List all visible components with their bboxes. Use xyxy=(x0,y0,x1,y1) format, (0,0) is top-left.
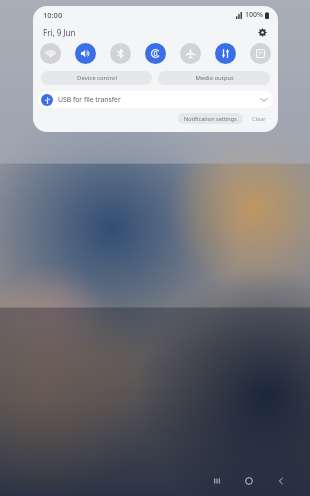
button[interactable]: Clear xyxy=(248,113,270,124)
staticText: Fri, 9 Jun xyxy=(43,27,76,38)
staticText: Notification settings xyxy=(184,115,237,123)
button[interactable]: Sound xyxy=(75,43,96,64)
button[interactable]: Back xyxy=(270,470,292,492)
button[interactable]: Wi-Fi xyxy=(40,43,61,64)
button[interactable]: Notification settings xyxy=(178,113,243,124)
staticText: 100% xyxy=(245,10,263,20)
button[interactable]: Recents xyxy=(206,470,228,492)
button[interactable]: Device control xyxy=(41,71,152,85)
button[interactable]: Media output xyxy=(158,71,270,85)
button[interactable]: Home xyxy=(238,470,260,492)
button[interactable]: Settings xyxy=(256,26,269,39)
staticText: USB for file transfer xyxy=(58,95,121,104)
button[interactable]: Screenshot xyxy=(250,43,271,64)
button[interactable]: Mobile data xyxy=(215,43,236,64)
staticText: 10:00 xyxy=(43,10,63,20)
staticText: Media output xyxy=(195,74,234,82)
button[interactable]: USB for file transfer xyxy=(38,91,273,108)
staticText: Device control xyxy=(77,74,117,82)
staticText: Clear xyxy=(252,115,266,123)
button[interactable]: Flight mode xyxy=(180,43,201,64)
button[interactable]: Bluetooth xyxy=(110,43,131,64)
button[interactable]: Auto rotate xyxy=(145,43,166,64)
